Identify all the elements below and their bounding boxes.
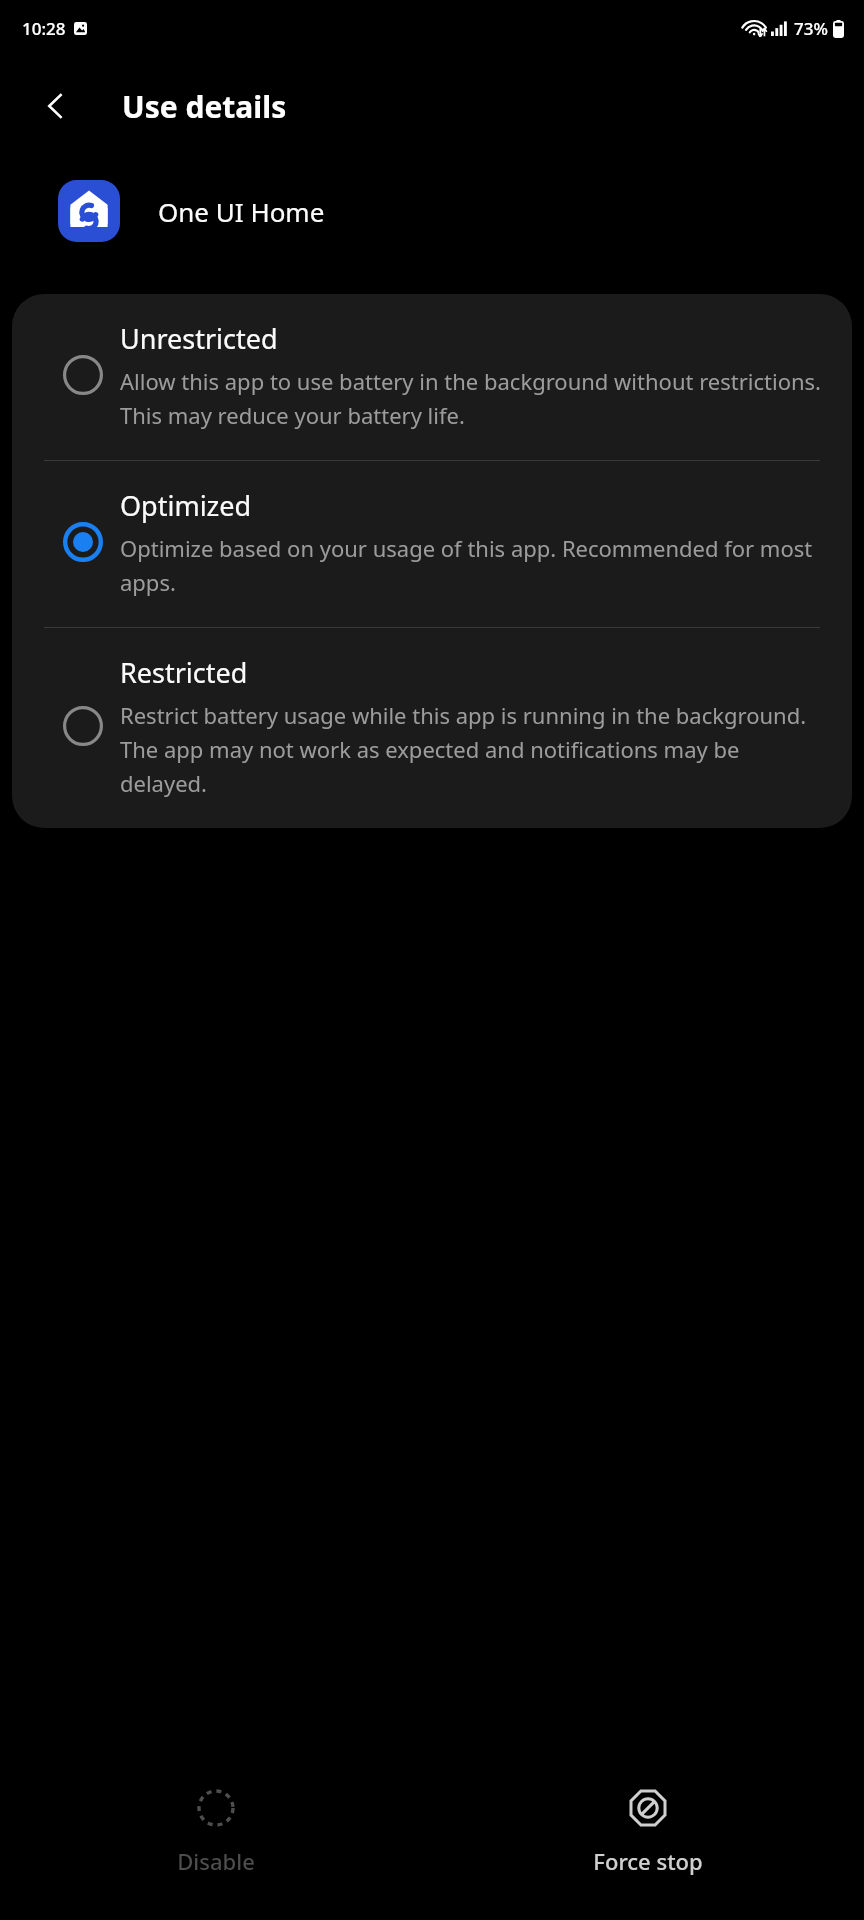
staticText: 10:28 <box>22 17 66 40</box>
button[interactable]: Disable <box>0 1740 432 1920</box>
staticText: One UI Home <box>158 194 325 229</box>
staticText: 73% <box>794 17 828 40</box>
button[interactable]: Restricted <box>12 628 852 828</box>
staticText: Restrict battery usage while this app is… <box>120 700 826 798</box>
staticText: Allow this app to use battery in the bac… <box>120 366 826 430</box>
staticText: Optimized <box>120 487 252 524</box>
button[interactable]: Force stop <box>432 1740 864 1920</box>
button[interactable]: Optimized <box>12 461 852 627</box>
staticText: Use details <box>122 86 287 127</box>
staticText: Force stop <box>593 1846 703 1876</box>
staticText: Optimize based on your usage of this app… <box>120 533 826 597</box>
staticText: Disable <box>177 1846 255 1876</box>
staticText: Restricted <box>120 654 248 691</box>
staticText: Unrestricted <box>120 320 278 357</box>
button[interactable]: Back <box>30 80 82 132</box>
button[interactable]: Unrestricted <box>12 294 852 460</box>
